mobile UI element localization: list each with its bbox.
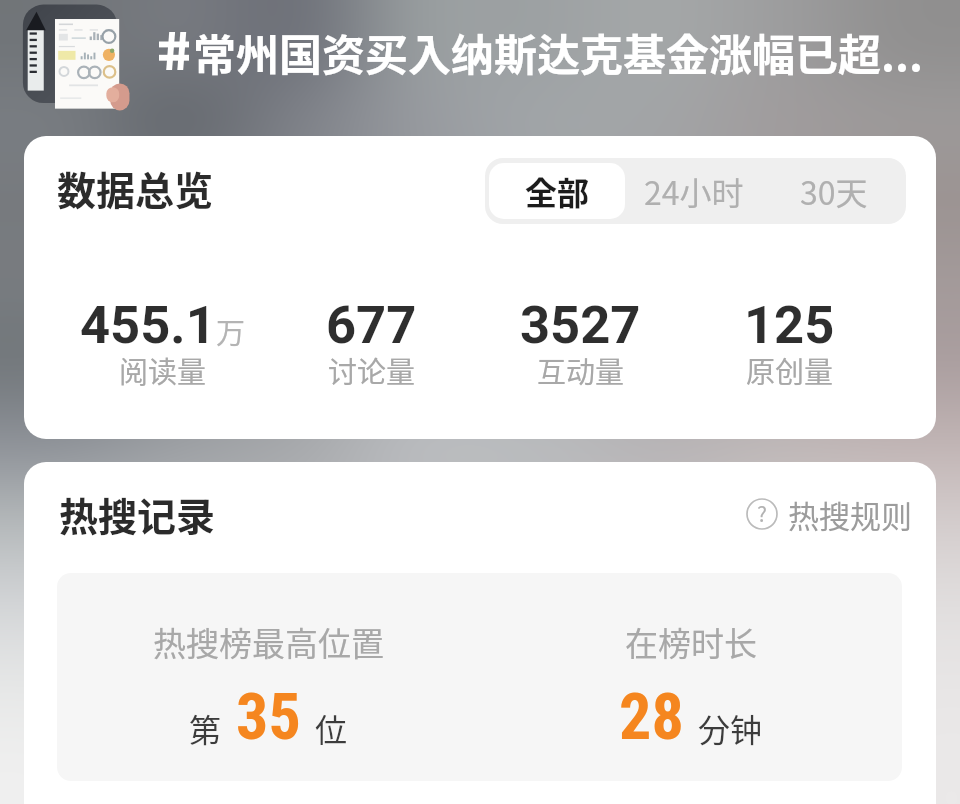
staticText: 28 [619,680,684,755]
button[interactable]: 在榜时长 [479,573,902,781]
button[interactable]: 热搜规则 [745,488,912,540]
staticText: 分钟 [698,705,763,751]
staticText: 3527 [520,294,641,356]
staticText: 35 [236,680,301,755]
button[interactable]: 24小时 [622,158,765,224]
staticText: ? [757,498,767,528]
staticText: 24小时 [644,168,744,214]
staticText: 125 [744,294,835,356]
staticText: 455.1 [80,294,216,356]
staticText: 互动量 [537,349,625,391]
staticText: 常州国资买入纳斯达克基金涨幅已超... [193,21,923,83]
staticText: 数据总览 [57,160,214,216]
button[interactable]: 125 [685,294,894,398]
staticText: 讨论量 [328,349,416,391]
staticText: 30天 [800,168,868,214]
staticText: 位 [315,705,348,751]
button[interactable]: 30天 [771,158,897,224]
button[interactable]: 话题配图 [17,1,124,104]
button[interactable]: 677 [267,294,476,398]
staticText: 热搜记录 [59,486,216,542]
button[interactable]: 全部 [489,163,625,219]
staticText: 677 [326,294,417,356]
staticText: 原创量 [746,349,834,391]
staticText: 第 [189,705,222,751]
staticText: 万 [216,310,246,352]
staticText: 热搜榜最高位置 [153,618,384,666]
staticText: 在榜时长 [625,618,757,666]
staticText: 热搜规则 [788,492,912,537]
button[interactable]: 3527 [476,294,685,398]
button[interactable]: 455.1 [58,294,267,398]
staticText: 全部 [525,168,590,214]
button[interactable]: 热搜榜最高位置 [57,573,479,781]
staticText: 阅读量 [119,349,207,391]
